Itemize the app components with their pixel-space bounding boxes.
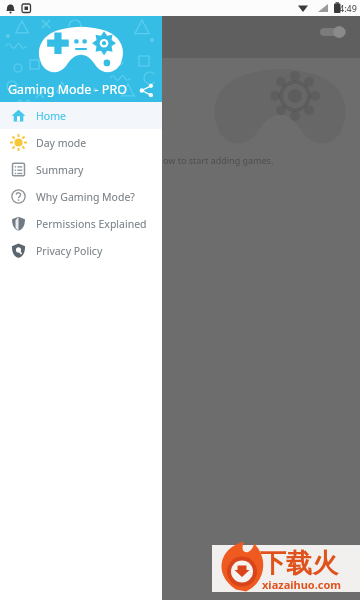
staticText: Privacy Policy [36, 244, 103, 258]
button[interactable]: Why Gaming Mode? [0, 183, 162, 210]
staticText: Day mode [36, 136, 87, 150]
button[interactable]: Day mode [0, 129, 162, 156]
button[interactable]: Toggle gaming mode [320, 25, 346, 39]
button[interactable]: Permissions Explained [0, 210, 162, 237]
staticText: Gaming Mode - PRO [8, 81, 127, 98]
staticText: ow to start adding games. [163, 154, 274, 166]
staticText: Home [36, 109, 66, 123]
button[interactable]: Share [136, 80, 156, 100]
staticText: xiazaihuo.com [262, 577, 342, 592]
staticText: Summary [36, 163, 84, 177]
button[interactable]: Privacy Policy [0, 237, 162, 264]
staticText: 4:49 [339, 2, 357, 14]
staticText: Permissions Explained [36, 217, 147, 231]
button[interactable]: Summary [0, 156, 162, 183]
staticText: Why Gaming Mode? [36, 190, 135, 204]
staticText: 下载火 [260, 547, 338, 580]
button[interactable]: Home [0, 102, 162, 129]
